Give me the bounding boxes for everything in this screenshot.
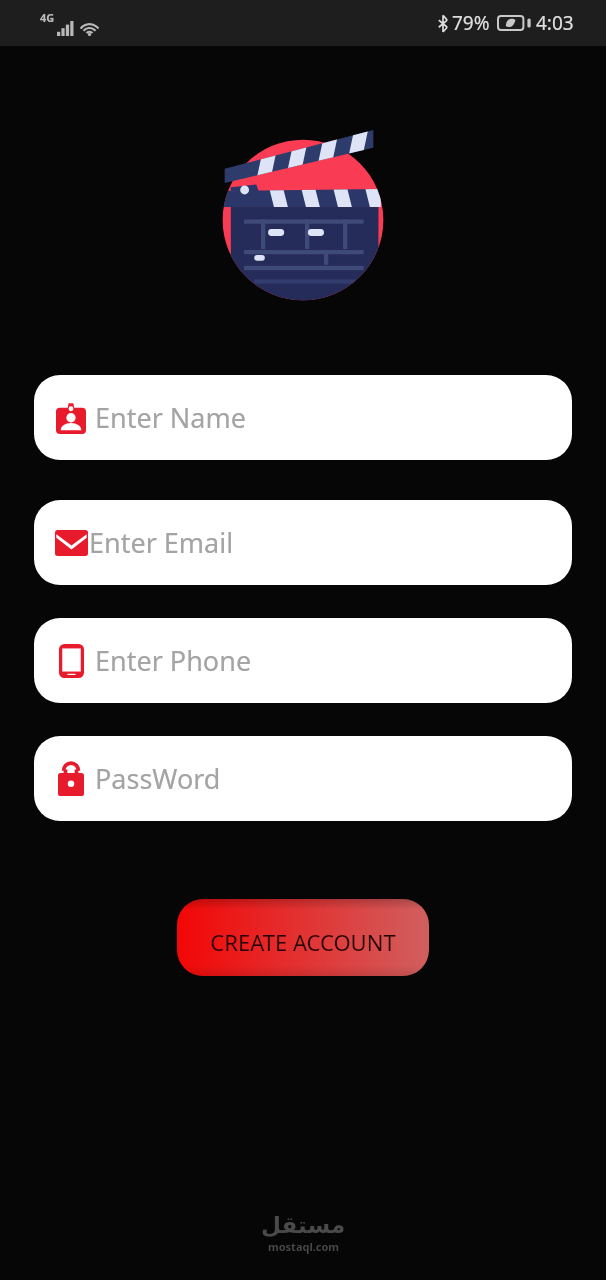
staticText: Enter Phone bbox=[95, 642, 252, 679]
button[interactable]: Enter Phone bbox=[34, 618, 572, 703]
staticText: Enter Email bbox=[89, 524, 234, 561]
button[interactable]: CREATE ACCOUNT bbox=[177, 899, 429, 976]
staticText: مستقل bbox=[261, 1212, 346, 1239]
button[interactable]: Enter Name bbox=[34, 375, 572, 460]
staticText: Enter Name bbox=[95, 399, 246, 436]
staticText: CREATE ACCOUNT bbox=[210, 927, 396, 957]
staticText: 79% bbox=[452, 10, 490, 36]
staticText: PassWord bbox=[95, 760, 221, 797]
staticText: 4G bbox=[40, 10, 55, 25]
staticText: mostaql.com bbox=[268, 1239, 340, 1254]
button[interactable]: Enter Email bbox=[34, 500, 572, 585]
staticText: 4:03 bbox=[536, 10, 574, 36]
button[interactable]: PassWord bbox=[34, 736, 572, 821]
